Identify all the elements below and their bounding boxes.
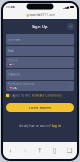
staticText: Log in (52, 124, 61, 128)
staticText: Sign Up (32, 24, 48, 29)
button[interactable]: Create Account (3, 103, 77, 112)
staticText: Create Account (29, 106, 51, 109)
button[interactable]: I agree to the (3, 92, 77, 99)
staticText: ‹ (9, 146, 11, 155)
staticText: Terms and Conditions (32, 94, 62, 97)
staticText: +1 (12, 63, 16, 66)
staticText: www.fast3971.com (29, 13, 54, 17)
staticText: ▯ (53, 147, 57, 154)
button[interactable]: Email (6, 46, 74, 56)
button[interactable]: 🔒 (3, 11, 77, 19)
staticText: already have an account? (19, 124, 51, 128)
staticText: 🔒 (26, 13, 29, 16)
staticText: ❑ (67, 147, 73, 154)
staticText: Phone (8, 59, 18, 62)
button[interactable]: Phone (6, 57, 74, 68)
staticText: ⌄ (70, 84, 72, 87)
button[interactable]: already have an account? (19, 123, 61, 129)
staticText: Password (8, 73, 20, 76)
button[interactable]: Share (33, 142, 47, 159)
staticText: 11:04 (6, 5, 15, 9)
staticText: ✕ (69, 25, 71, 28)
button[interactable]: Back (3, 142, 18, 159)
staticText: Username (8, 38, 21, 41)
staticText: Preferred currency (8, 82, 34, 86)
button[interactable]: Close (67, 23, 74, 30)
staticText: › (24, 146, 26, 155)
staticText: Email (8, 49, 14, 53)
button[interactable]: Bookmarks (47, 142, 62, 159)
button[interactable]: Preferred currency (6, 81, 74, 91)
button[interactable]: Tabs (62, 142, 77, 159)
button[interactable]: Password (6, 69, 74, 80)
staticText: ▁▃▅ (63, 5, 69, 8)
staticText: USD (12, 86, 17, 90)
staticText: I agree to the (10, 94, 30, 97)
staticText: ↑ (37, 147, 43, 154)
button[interactable]: Username (6, 34, 74, 45)
